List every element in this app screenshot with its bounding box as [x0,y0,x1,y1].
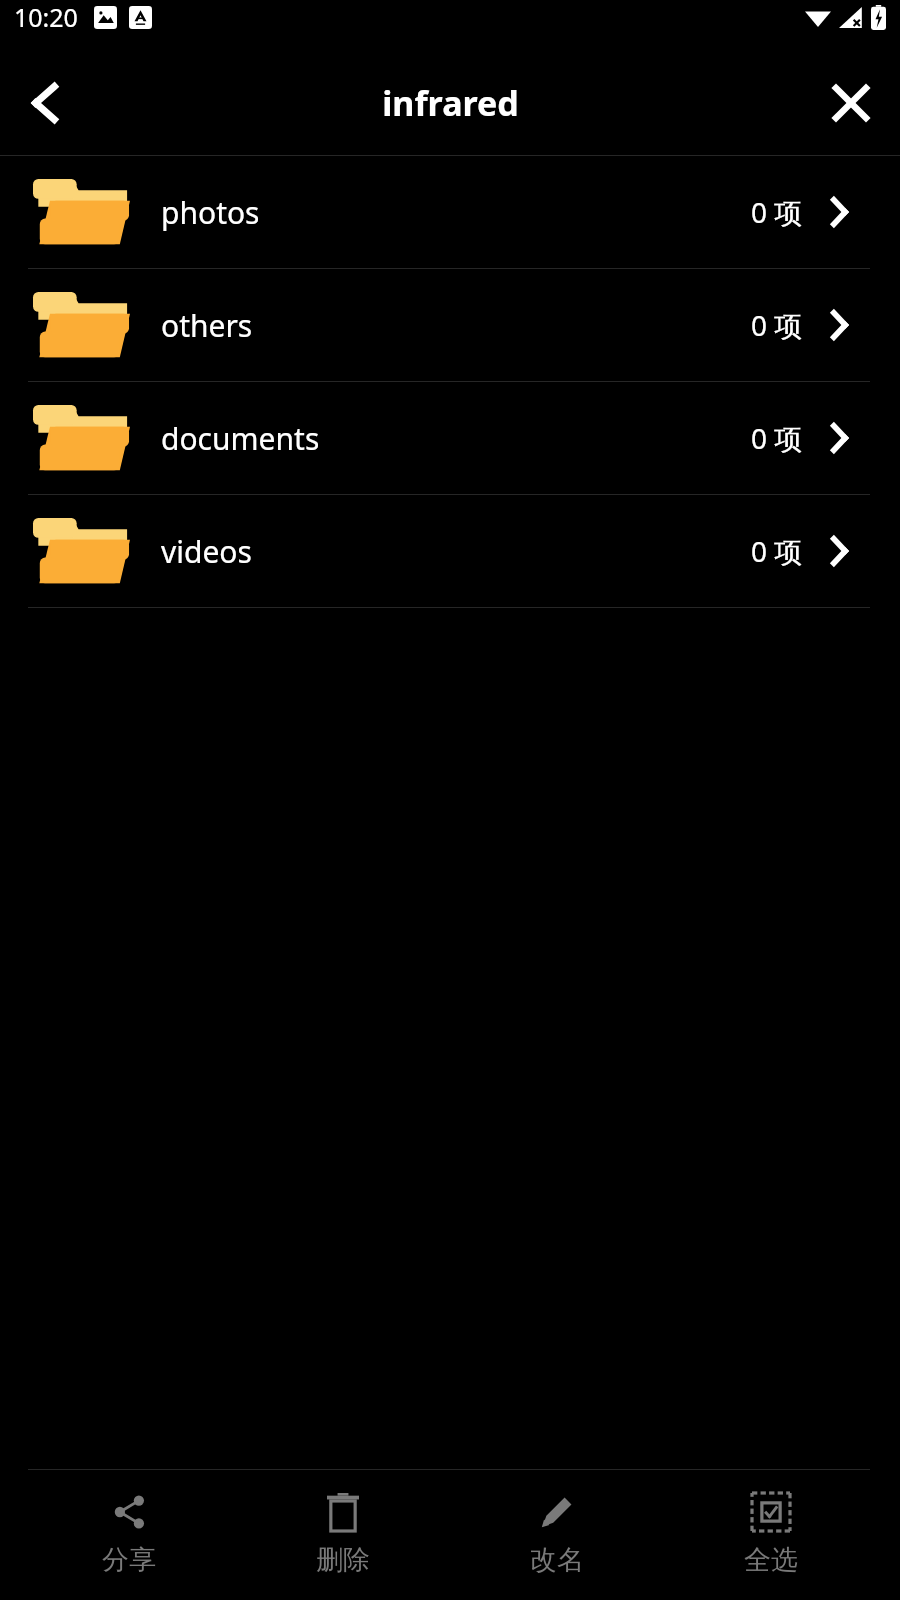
button[interactable]: 分享 [44,1487,214,1583]
staticText: infrared [382,80,519,126]
staticText: photos [161,192,260,233]
button[interactable]: videos [0,495,900,608]
staticText: 全选 [744,1543,798,1577]
button[interactable]: photos [0,156,900,269]
staticText: 0 项 [751,193,803,231]
staticText: others [161,305,253,346]
staticText: videos [161,531,252,572]
button[interactable]: Back [8,66,82,140]
button[interactable]: 全选 [686,1487,856,1583]
staticText: documents [161,418,320,459]
button[interactable]: documents [0,382,900,495]
button[interactable]: others [0,269,900,382]
button[interactable]: 删除 [258,1487,428,1583]
button[interactable]: 改名 [472,1487,642,1583]
staticText: 10:20 [14,0,78,34]
button[interactable]: Close [816,68,886,138]
staticText: 删除 [316,1543,370,1577]
staticText: 0 项 [751,306,803,344]
staticText: 0 项 [751,419,803,457]
staticText: 0 项 [751,532,803,570]
staticText: 改名 [530,1543,584,1577]
staticText: 分享 [102,1543,156,1577]
